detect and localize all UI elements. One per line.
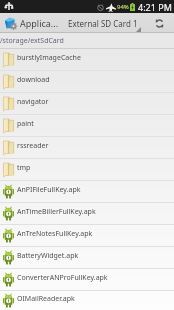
- staticText: BatteryWidget.apk: [17, 251, 79, 261]
- staticText: tmp: [17, 163, 31, 173]
- staticText: Applica...: [20, 17, 59, 29]
- button[interactable]: download: [0, 71, 174, 92]
- staticText: OIMailReader.apk: [17, 294, 75, 304]
- staticText: burstlyImageCache: [17, 53, 81, 63]
- staticText: AnTreNotesFullKey.apk: [17, 229, 93, 239]
- staticText: paint: [17, 119, 34, 129]
- button[interactable]: AnTreNotesFullKey.apk: [0, 225, 174, 246]
- staticText: rssreader: [17, 141, 49, 151]
- staticText: AnPIFileFullKey.apk: [17, 185, 81, 195]
- button[interactable]: ConverterANProFullKey.apk: [0, 269, 174, 290]
- staticText: AnTimeBillerFullKey.apk: [17, 207, 96, 217]
- staticText: ConverterANProFullKey.apk: [17, 273, 108, 283]
- staticText: navigator: [17, 97, 49, 107]
- button[interactable]: navigator: [0, 93, 174, 114]
- button[interactable]: External SD Card 1: [59, 13, 144, 33]
- button[interactable]: AnPIFileFullKey.apk: [0, 181, 174, 202]
- staticText: download: [17, 75, 50, 85]
- staticText: 94%: [117, 3, 129, 11]
- staticText: External SD Card 1: [68, 18, 138, 29]
- button[interactable]: AnTimeBillerFullKey.apk: [0, 203, 174, 224]
- button[interactable]: burstlyImageCache: [0, 49, 174, 70]
- staticText: /storage/extSdCard: [0, 36, 64, 46]
- button[interactable]: rssreader: [0, 137, 174, 158]
- button[interactable]: OIMailReader.apk: [0, 291, 174, 310]
- button[interactable]: Refresh: [144, 13, 174, 33]
- button[interactable]: BatteryWidget.apk: [0, 247, 174, 268]
- staticText: 4:21 PM: [138, 1, 172, 13]
- button[interactable]: paint: [0, 115, 174, 136]
- button[interactable]: tmp: [0, 159, 174, 180]
- button[interactable]: Applica...: [0, 13, 59, 33]
